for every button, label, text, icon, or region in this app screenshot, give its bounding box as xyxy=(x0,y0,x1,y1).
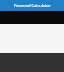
staticText: Financial Calculator xyxy=(14,3,51,8)
